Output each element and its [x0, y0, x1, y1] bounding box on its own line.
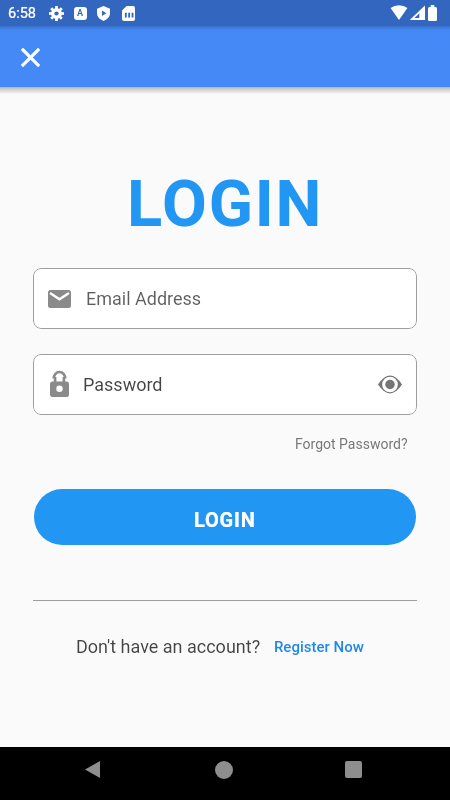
button[interactable] [14, 41, 46, 73]
button[interactable]: Register Now [274, 638, 364, 656]
staticText: Email Address [86, 288, 202, 309]
button[interactable] [375, 373, 405, 396]
staticText: A [77, 8, 84, 19]
staticText: LOGIN [127, 166, 324, 242]
button[interactable]: LOGIN [34, 489, 416, 545]
button[interactable] [85, 761, 100, 778]
staticText: LOGIN [194, 508, 256, 531]
button[interactable]: Password [33, 354, 417, 415]
button[interactable] [215, 761, 233, 779]
staticText: Register Now [274, 638, 364, 656]
staticText: Don't have an account? [76, 636, 261, 657]
button[interactable]: Forgot Password? [295, 436, 408, 452]
button[interactable] [345, 761, 362, 778]
staticText: 6:58 [8, 5, 36, 22]
staticText: Password [83, 374, 163, 395]
staticText: Forgot Password? [295, 436, 408, 452]
button[interactable]: Email Address [33, 268, 417, 329]
